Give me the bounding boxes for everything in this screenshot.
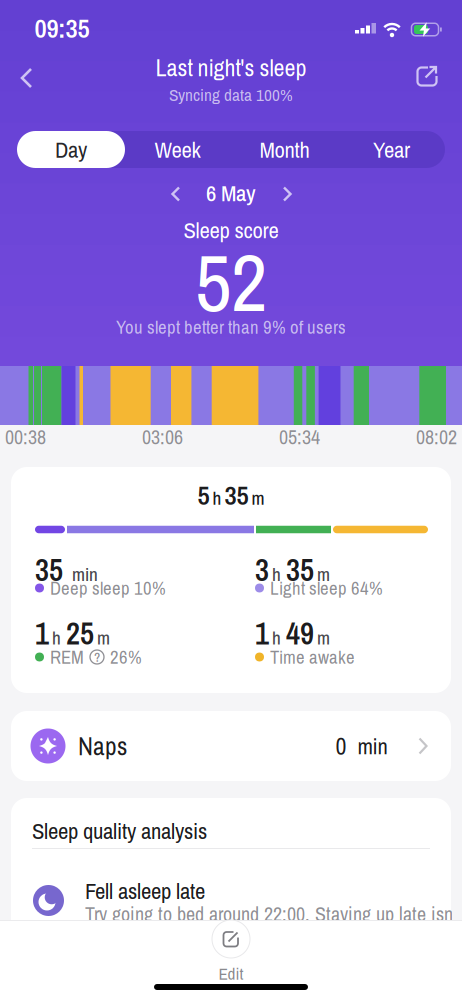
staticText: 1 (35, 613, 49, 654)
staticText: 3 (255, 550, 269, 590)
staticText: m (317, 562, 330, 587)
staticText: min (72, 562, 98, 587)
staticText: You slept better than 9% of users (116, 315, 346, 339)
button[interactable]: Day (17, 131, 125, 168)
staticText: m (251, 486, 264, 510)
button[interactable]: Month (231, 131, 338, 168)
staticText: 05:34 (279, 424, 320, 450)
staticText: Fell asleep late (85, 876, 205, 906)
staticText: Deep sleep 10% (50, 576, 166, 600)
button[interactable]: Edit (212, 920, 250, 985)
staticText: 00:38 (5, 424, 46, 450)
button[interactable]: Share (416, 65, 438, 87)
button[interactable]: Naps (11, 711, 451, 781)
staticText: 6 May (206, 178, 256, 208)
staticText: Syncing data 100% (169, 83, 293, 106)
staticText: h (272, 626, 281, 650)
staticText: Naps (78, 729, 127, 763)
staticText: 09:35 (34, 10, 89, 45)
staticText: h (272, 562, 281, 587)
button[interactable]: Week (124, 131, 231, 168)
staticText: h (212, 486, 221, 510)
staticText: m (317, 626, 330, 650)
staticText: min (357, 731, 387, 761)
staticText: Edit (218, 962, 243, 985)
staticText: 35 (35, 550, 63, 590)
staticText: Year (373, 135, 410, 164)
staticText: Sleep score (183, 215, 278, 245)
staticText: 1 (255, 613, 269, 654)
staticText: 25 (66, 613, 94, 654)
staticText: Last night's sleep (155, 52, 306, 83)
staticText: 49 (286, 613, 314, 654)
button[interactable]: Year (338, 131, 445, 168)
button[interactable]: Fell asleep late (33, 885, 64, 916)
staticText: m (97, 626, 110, 650)
staticText: REM (50, 645, 84, 669)
staticText: 03:06 (142, 424, 183, 450)
staticText: Light sleep 64% (270, 576, 383, 600)
staticText: 08:02 (416, 424, 457, 450)
staticText: ? (94, 648, 100, 666)
staticText: 52 (195, 229, 267, 335)
staticText: h (52, 626, 61, 650)
staticText: Day (55, 135, 87, 164)
staticText: Week (154, 135, 200, 164)
staticText: Sleep quality analysis (32, 816, 207, 846)
staticText: Time awake (270, 645, 355, 669)
staticText: 35 (286, 550, 314, 590)
staticText: Try going to bed around 22:00. Staying u… (85, 901, 462, 927)
button[interactable]: Back (20, 67, 36, 89)
staticText: 0 (335, 730, 346, 762)
staticText: 35 (224, 477, 248, 512)
staticText: 5 (197, 477, 209, 512)
staticText: 26% (110, 645, 142, 669)
button[interactable]: Next day (282, 186, 292, 201)
staticText: Month (259, 135, 309, 164)
button[interactable]: Previous day (171, 186, 181, 201)
